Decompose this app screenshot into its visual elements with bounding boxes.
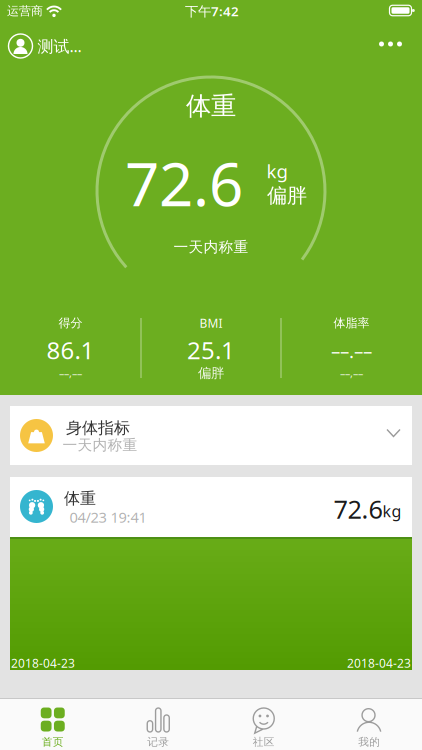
staticText: 04/23 19:41 (69, 507, 146, 527)
staticText: 社区 (253, 735, 275, 748)
staticText: 偏胖 (198, 365, 224, 381)
staticText: 72.6 (333, 492, 382, 526)
staticText: 体脂率 (333, 316, 369, 330)
staticText: 72.6 (125, 143, 243, 223)
staticText: 测试... (37, 35, 81, 57)
button[interactable]: 首页 (0, 699, 105, 750)
staticText: 偏胖 (267, 183, 307, 208)
button[interactable]: 社区 (211, 699, 316, 750)
staticText: 86.1 (46, 334, 94, 366)
staticText: 得分 (58, 316, 82, 330)
staticText: 我的 (358, 735, 380, 748)
button[interactable]: 记录 (105, 699, 211, 750)
staticText: ––.–– (331, 339, 372, 363)
button[interactable]: 身体指标 (10, 406, 412, 465)
button[interactable]: 更多 (379, 41, 402, 46)
staticText: 首页 (42, 735, 64, 748)
button[interactable]: 我的 (316, 699, 422, 750)
staticText: 身体指标 (66, 418, 130, 438)
staticText: ––,–– (59, 366, 82, 380)
staticText: ––,–– (340, 366, 363, 380)
staticText: 一天内称重 (173, 238, 248, 256)
staticText: 体重 (64, 489, 96, 508)
staticText: 25.1 (187, 334, 235, 366)
staticText: 下午7:42 (185, 2, 239, 20)
staticText: kg (266, 159, 287, 183)
staticText: 一天内称重 (62, 436, 137, 454)
staticText: kg (382, 500, 401, 522)
staticText: BMI (199, 315, 222, 331)
staticText: 记录 (147, 735, 169, 748)
staticText: 2018-04-23 (11, 655, 75, 671)
button[interactable]: 体重 (10, 477, 412, 537)
button[interactable]: 测试... (8, 34, 81, 58)
staticText: 体重 (186, 90, 236, 121)
staticText: 运营商 (7, 4, 43, 18)
staticText: 2018-04-23 (347, 655, 411, 671)
